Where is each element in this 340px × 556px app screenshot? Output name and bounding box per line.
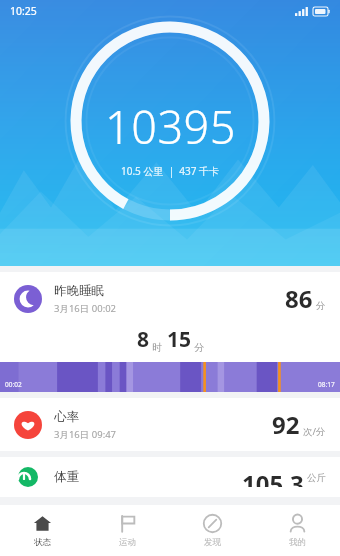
button[interactable]: 我的 [255, 505, 340, 556]
staticText: 3月16日 09:47 [54, 428, 117, 441]
staticText: 3月16日 00:02 [54, 302, 117, 315]
staticText: 8 [137, 325, 150, 354]
button[interactable]: 状态 [0, 505, 85, 556]
button[interactable]: 心率 [0, 398, 340, 451]
button[interactable]: 运动 [85, 505, 170, 556]
staticText: 10:25 [10, 4, 37, 18]
button[interactable]: 发现 [170, 505, 255, 556]
staticText: 10.5 公里 | 437 千卡 [121, 164, 220, 178]
staticText: 次/分 [303, 425, 326, 438]
staticText: 10395 [105, 96, 236, 157]
staticText: 公斤 [307, 472, 326, 484]
staticText: 运动 [119, 537, 136, 548]
staticText: 我的 [289, 537, 306, 548]
staticText: 105.3 [242, 467, 304, 487]
staticText: 时 [152, 341, 162, 354]
staticText: 00:02 [5, 380, 22, 389]
staticText: 发现 [204, 537, 221, 548]
staticText: 分 [194, 341, 204, 354]
staticText: 08:17 [318, 380, 335, 389]
staticText: 状态 [34, 537, 51, 548]
staticText: 92 [272, 408, 300, 441]
staticText: 15 [167, 325, 192, 354]
button[interactable]: 体重 [0, 457, 340, 497]
staticText: 体重 [54, 469, 79, 485]
staticText: 心率 [54, 409, 79, 425]
staticText: 昨晚睡眠 [54, 283, 104, 299]
staticText: 分 [316, 300, 326, 312]
staticText: 86 [285, 282, 313, 315]
button[interactable]: 昨晚睡眠 [0, 272, 340, 392]
